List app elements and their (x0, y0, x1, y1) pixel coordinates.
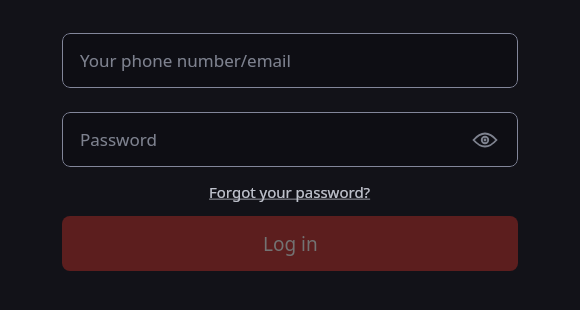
staticText: Your phone number/email (80, 49, 291, 72)
button[interactable]: Show password (470, 125, 500, 155)
button[interactable]: Forgot your password? (207, 181, 373, 203)
staticText: Forgot your password? (209, 182, 371, 202)
staticText: Password (80, 128, 157, 151)
staticText: Log in (263, 231, 318, 257)
button[interactable]: Password (62, 112, 518, 167)
button[interactable]: Log in (62, 216, 518, 271)
button[interactable]: Your phone number/email (62, 33, 518, 88)
